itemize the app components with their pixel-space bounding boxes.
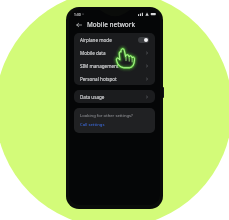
staticText: SIM management <box>80 63 119 69</box>
staticText: Call settings <box>80 122 105 128</box>
staticText: Data usage <box>80 94 105 100</box>
staticText: 1:30 <box>74 12 81 16</box>
staticText: Mobile network <box>87 20 135 29</box>
staticText: Personal hotspot <box>80 76 117 82</box>
button[interactable]: Data usage <box>74 90 155 103</box>
button[interactable]: Personal hotspot <box>74 72 155 85</box>
button[interactable]: Call settings <box>80 122 105 128</box>
staticText: Mobile data <box>80 50 106 56</box>
staticText: Airplane mode <box>80 37 112 43</box>
button[interactable]: SIM management <box>74 59 155 72</box>
button[interactable]: Back <box>74 20 83 29</box>
button[interactable]: Mobile data <box>74 46 155 59</box>
staticText: Looking for other settings? <box>80 113 133 119</box>
button[interactable]: Airplane mode <box>74 33 155 46</box>
